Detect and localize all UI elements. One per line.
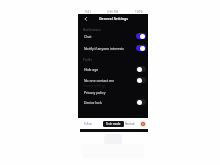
staticText: Notify if anyone interests xyxy=(84,46,136,51)
button[interactable]: Notify if anyone interests xyxy=(78,43,148,53)
staticText: 9:41 xyxy=(85,10,91,14)
staticText: Hide age xyxy=(84,67,136,72)
button[interactable]: Tech mode xyxy=(103,121,124,127)
button[interactable]: Hide age xyxy=(78,64,148,74)
button[interactable]: Back xyxy=(81,14,90,23)
button[interactable]: Device lock xyxy=(78,97,148,107)
button[interactable]: Privacy policy xyxy=(78,87,148,97)
staticText: Follow xyxy=(84,122,92,126)
button[interactable]: No one contact me xyxy=(78,75,148,85)
staticText: Next ad xyxy=(125,122,135,126)
staticText: Privacy policy xyxy=(84,90,146,95)
staticText: Chat xyxy=(84,34,136,39)
staticText: Profile xyxy=(83,58,93,62)
staticText: General Settings xyxy=(99,16,128,21)
staticText: Device lock xyxy=(84,100,136,105)
button[interactable]: Follow xyxy=(84,122,92,126)
staticText: Privacy settings xyxy=(83,84,105,88)
staticText: 2:36 PM xyxy=(107,10,119,14)
staticText: 100% xyxy=(135,10,143,14)
staticText: Tech mode xyxy=(106,122,121,126)
staticText: Notifications xyxy=(83,28,101,32)
button[interactable]: Chat xyxy=(78,31,148,41)
button[interactable]: Profile xyxy=(140,121,146,127)
staticText: No one contact me xyxy=(84,78,136,83)
